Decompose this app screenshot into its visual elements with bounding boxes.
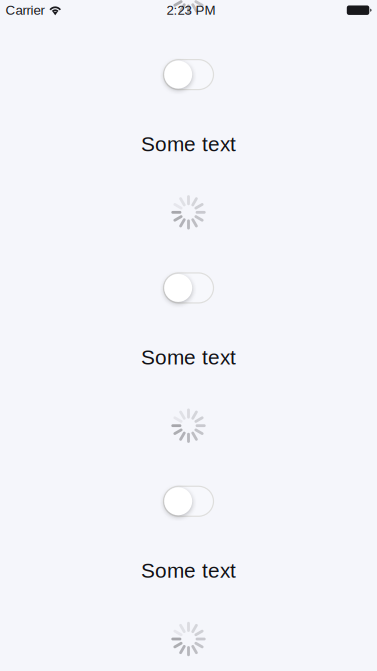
staticText: Carrier	[5, 3, 44, 18]
button[interactable]: Toggle	[163, 273, 213, 303]
staticText: Some text	[141, 132, 236, 155]
staticText: Some text	[141, 346, 236, 369]
button[interactable]: Toggle	[163, 486, 213, 516]
staticText: Some text	[141, 559, 236, 582]
button[interactable]: Toggle	[163, 60, 213, 90]
staticText: 2:23 PM	[166, 3, 215, 18]
